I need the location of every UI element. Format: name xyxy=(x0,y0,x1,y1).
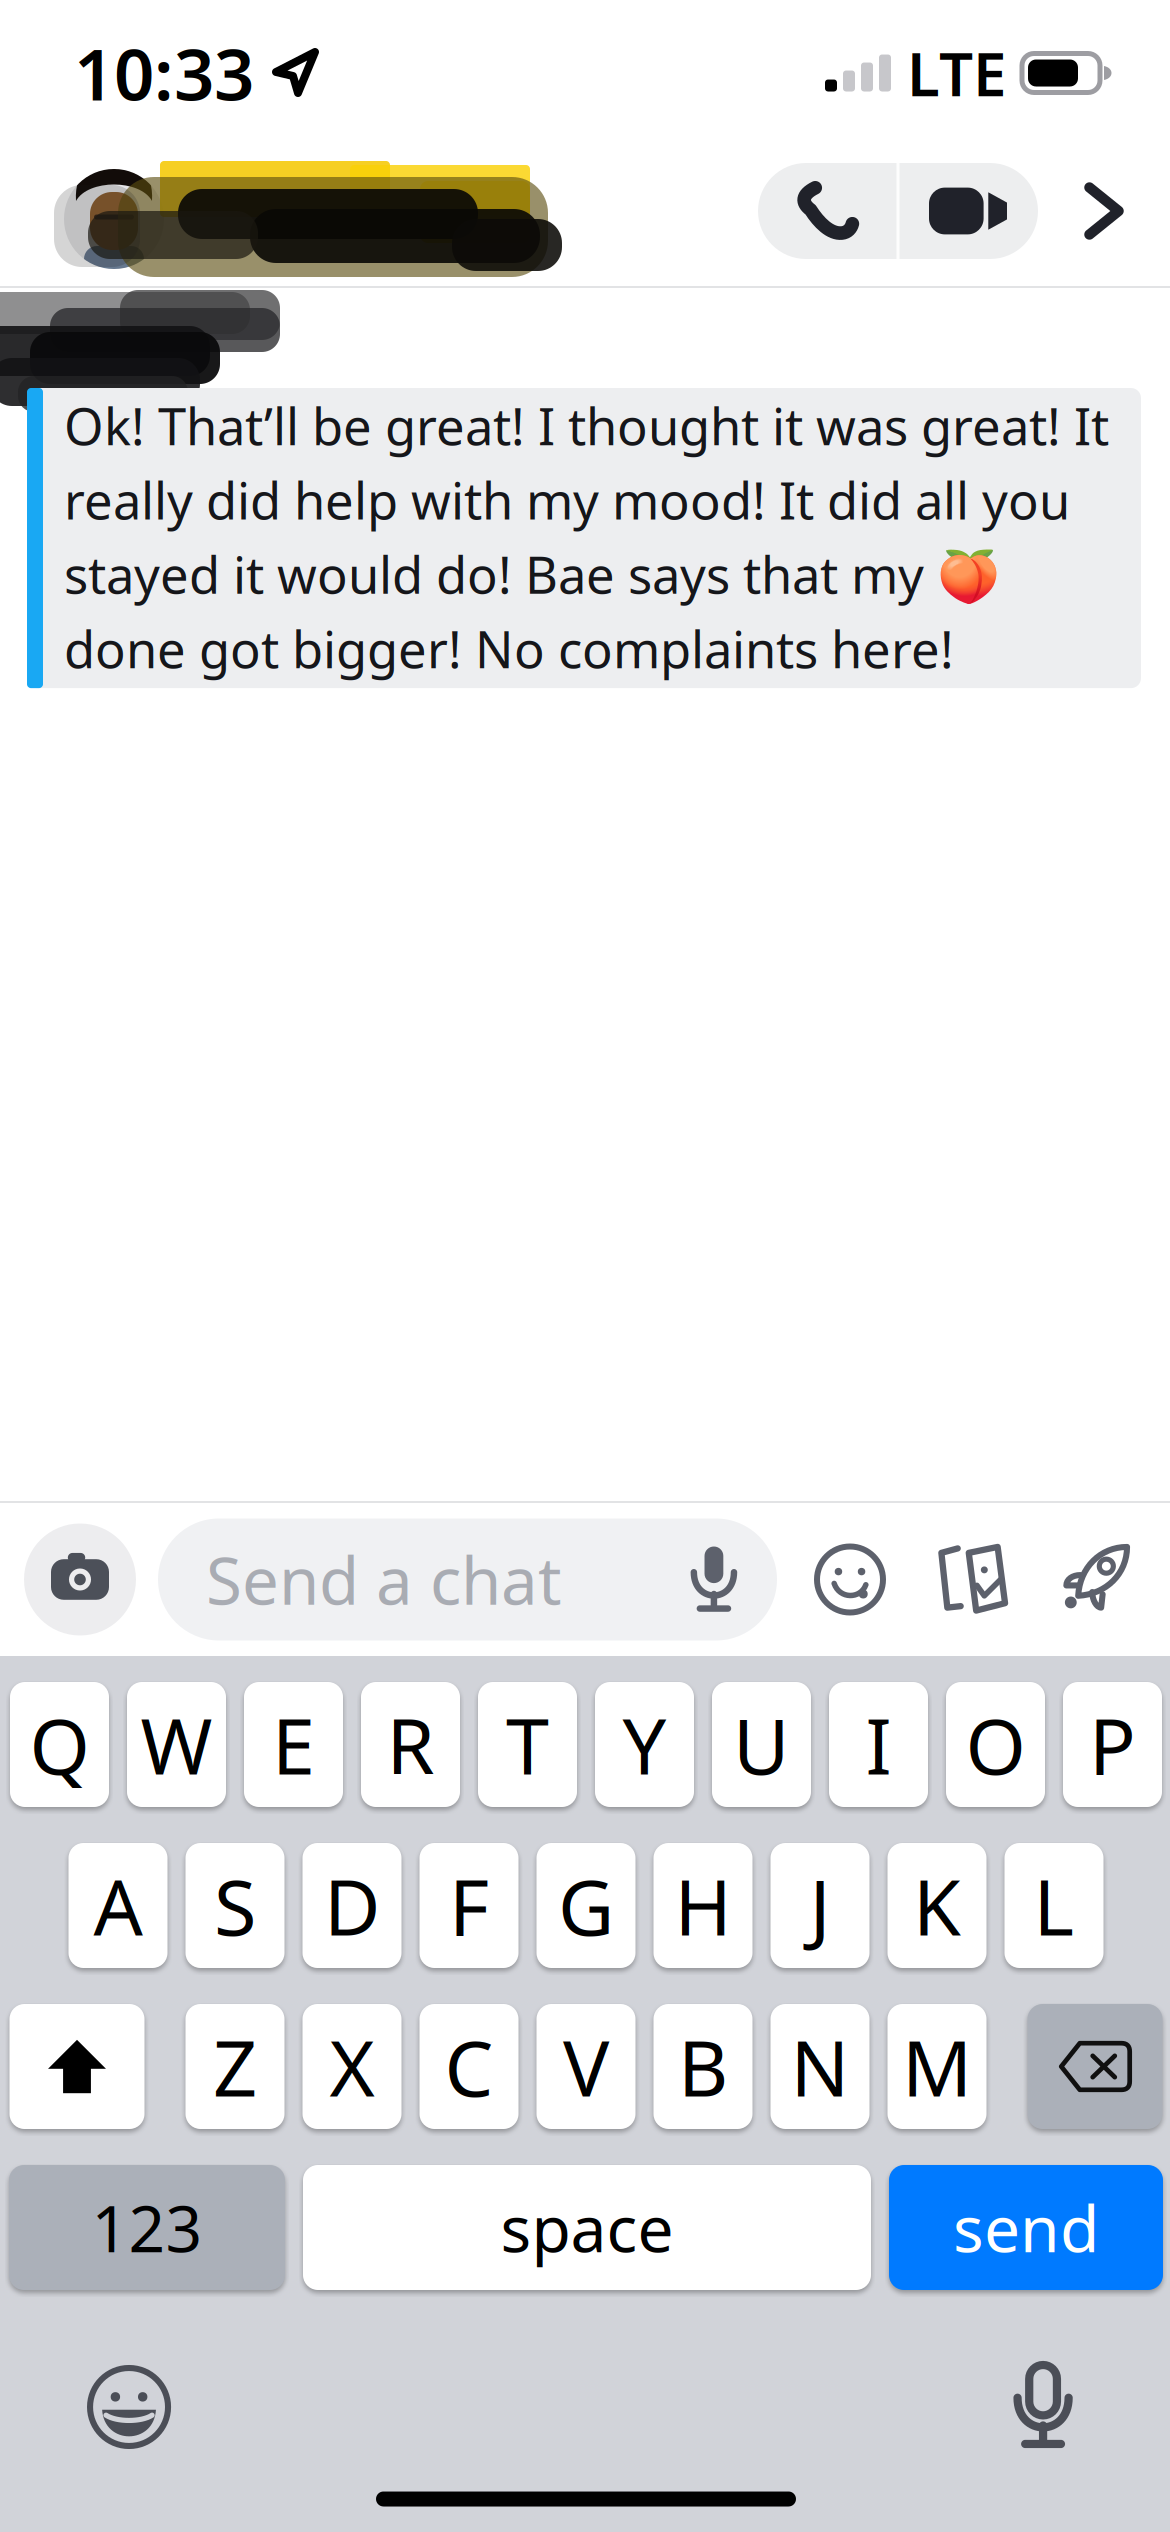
button[interactable]: E xyxy=(244,1682,343,1807)
staticText: Y xyxy=(622,1693,666,1796)
staticText: W xyxy=(140,1693,212,1796)
staticText: space xyxy=(500,2185,673,2270)
button[interactable]: A xyxy=(68,1843,167,1968)
staticText: K xyxy=(913,1854,961,1957)
button[interactable]: Dictation xyxy=(1011,2365,1075,2449)
button[interactable]: W xyxy=(127,1682,226,1807)
button[interactable]: Open camera xyxy=(24,1523,136,1635)
staticText: A xyxy=(93,1854,142,1957)
button[interactable]: space xyxy=(303,2165,871,2290)
staticText: Send a chat xyxy=(206,1536,562,1623)
button[interactable]: Video call xyxy=(898,163,1038,259)
button[interactable]: Shift xyxy=(9,2004,144,2129)
button[interactable]: Z xyxy=(185,2004,284,2129)
button[interactable]: Emoji keyboard xyxy=(87,2365,171,2449)
staticText: Z xyxy=(213,2015,257,2118)
button[interactable]: send xyxy=(889,2165,1163,2290)
button[interactable]: H xyxy=(653,1843,752,1968)
button[interactable]: I xyxy=(829,1682,928,1807)
staticText: U xyxy=(733,1693,790,1796)
staticText: I xyxy=(865,1693,891,1796)
staticText: Ok! That’ll be great! I thought it was g… xyxy=(64,392,1109,682)
button[interactable]: T xyxy=(478,1682,577,1807)
staticText: N xyxy=(790,2015,849,2118)
button[interactable]: M xyxy=(887,2004,986,2129)
staticText: M xyxy=(902,2015,972,2118)
button[interactable]: C xyxy=(419,2004,518,2129)
staticText: R xyxy=(386,1693,434,1796)
button[interactable]: K xyxy=(887,1843,986,1968)
button[interactable]: F xyxy=(419,1843,518,1968)
button[interactable]: S xyxy=(185,1843,284,1968)
staticText: E xyxy=(272,1693,315,1796)
staticText: T xyxy=(506,1693,549,1796)
button[interactable]: Emoji xyxy=(814,1543,886,1615)
button[interactable]: N xyxy=(770,2004,869,2129)
staticText: send xyxy=(953,2185,1099,2270)
button[interactable]: B xyxy=(653,2004,752,2129)
button[interactable]: Stickers xyxy=(934,1542,1008,1616)
button[interactable]: O xyxy=(946,1682,1045,1807)
staticText: Q xyxy=(29,1693,89,1796)
staticText: LTE xyxy=(907,33,1006,113)
button[interactable]: More options xyxy=(1038,163,1170,259)
staticText: O xyxy=(965,1693,1025,1796)
staticText: P xyxy=(1089,1693,1136,1796)
button[interactable]: R xyxy=(361,1682,460,1807)
button[interactable]: J xyxy=(770,1843,869,1968)
button[interactable]: Games xyxy=(1056,1542,1130,1616)
staticText: H xyxy=(674,1854,731,1957)
button[interactable]: Y xyxy=(595,1682,694,1807)
button[interactable]: 123 xyxy=(9,2165,285,2290)
button[interactable]: Q xyxy=(10,1682,109,1807)
button[interactable]: L xyxy=(1004,1843,1103,1968)
button[interactable]: Send a chat xyxy=(158,1518,777,1640)
staticText: B xyxy=(678,2015,728,2118)
staticText: C xyxy=(444,2015,493,2118)
button[interactable]: G xyxy=(536,1843,635,1968)
staticText: S xyxy=(214,1854,256,1957)
staticText: X xyxy=(329,2015,374,2118)
staticText: 10:33 xyxy=(74,26,254,120)
button[interactable]: P xyxy=(1063,1682,1162,1807)
button[interactable]: V xyxy=(536,2004,635,2129)
staticText: L xyxy=(1033,1854,1074,1957)
staticText: 123 xyxy=(91,2185,202,2270)
button[interactable]: X xyxy=(302,2004,401,2129)
staticText: F xyxy=(449,1854,489,1957)
button[interactable]: U xyxy=(712,1682,811,1807)
staticText: J xyxy=(809,1854,830,1957)
button[interactable]: Voice call xyxy=(758,163,898,259)
staticText: D xyxy=(324,1854,380,1957)
staticText: G xyxy=(558,1854,614,1957)
button[interactable]: Delete xyxy=(1027,2004,1162,2129)
staticText: V xyxy=(563,2015,609,2118)
button[interactable]: D xyxy=(302,1843,401,1968)
